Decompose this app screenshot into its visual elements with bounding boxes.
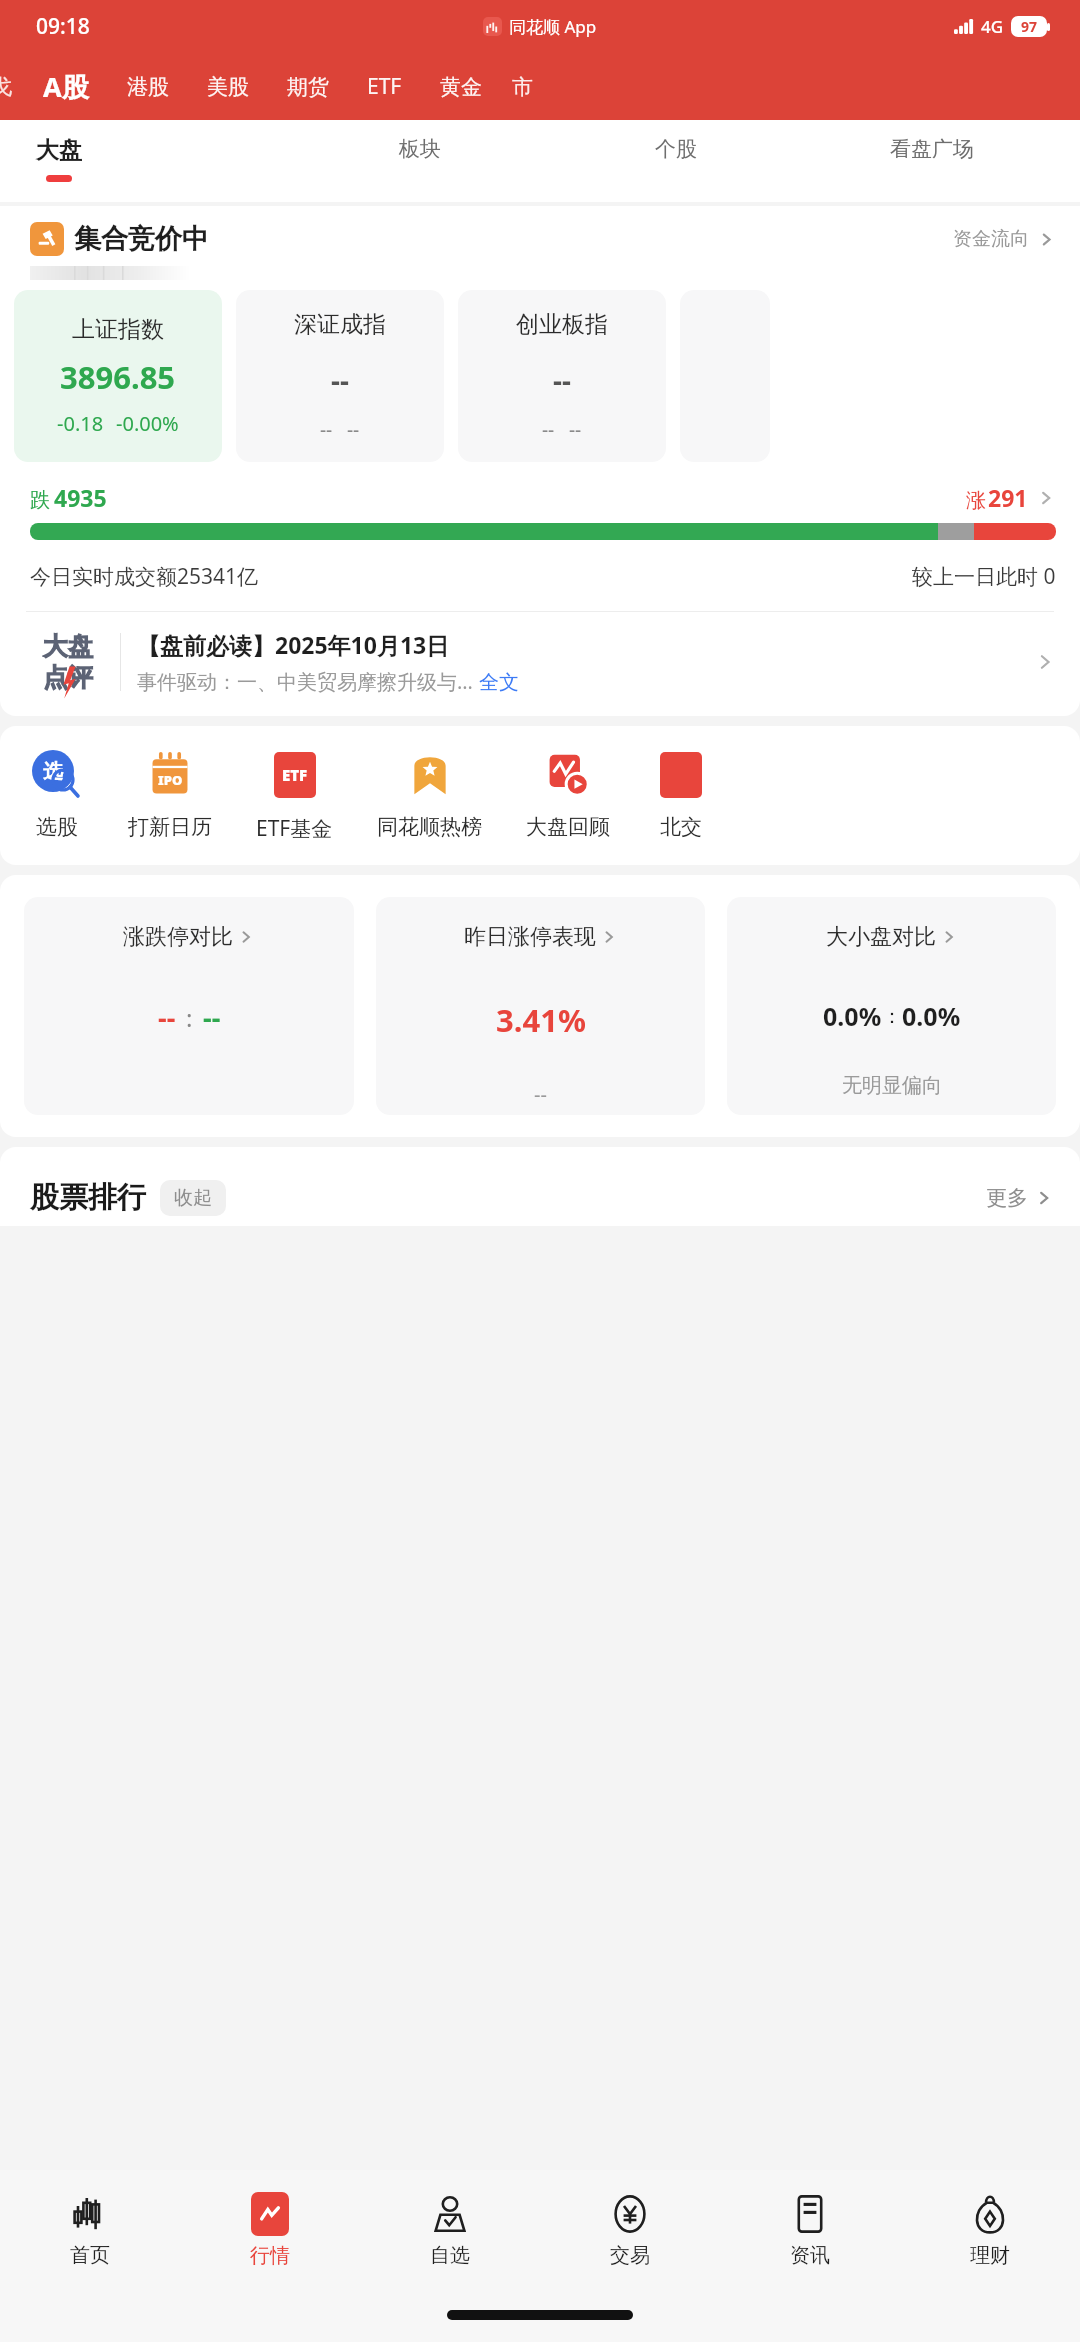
button[interactable]: 期货 [287, 74, 329, 100]
staticText: 3896.85 [60, 356, 176, 398]
staticText: 09:18 [36, 12, 90, 41]
staticText: 板块 [399, 136, 441, 162]
staticText: 0.0% [823, 999, 882, 1033]
staticText: 首页 [70, 2243, 110, 2268]
button[interactable]: 理财 [900, 2170, 1080, 2288]
staticText: ETF [282, 765, 308, 785]
button[interactable]: 美股 [207, 74, 249, 100]
staticText: 大盘 [36, 136, 82, 165]
staticText: 97 [1021, 17, 1038, 36]
staticText: 涨跌停对比 [123, 923, 233, 951]
staticText: -- [158, 999, 176, 1036]
staticText: IPO [158, 771, 183, 789]
button[interactable]: 黄金 [440, 74, 482, 100]
staticText: 今日实时成交额25341亿 [30, 562, 259, 591]
button[interactable]: 大盘回顾 [526, 748, 610, 840]
button[interactable]: 跌 [30, 482, 1056, 513]
button[interactable]: A股 [43, 68, 89, 105]
staticText: 个股 [655, 136, 697, 162]
button[interactable]: 更多 [986, 1185, 1054, 1211]
staticText: 涨 [966, 488, 986, 513]
button[interactable]: 北交 [654, 748, 708, 840]
button[interactable]: 涨跌停对比 [24, 897, 354, 1115]
staticText: -- [542, 417, 555, 443]
button[interactable]: 自选 [360, 2170, 540, 2288]
staticText: 美股 [207, 74, 249, 100]
button[interactable]: 看盘广场 [804, 120, 1060, 162]
staticText: : [186, 1001, 193, 1034]
button[interactable]: 首页 [0, 2170, 180, 2288]
button[interactable]: 资讯 [720, 2170, 900, 2288]
staticText: 大盘回顾 [526, 814, 610, 840]
button[interactable]: 大小盘对比 [727, 897, 1056, 1115]
button[interactable]: 交易 [540, 2170, 720, 2288]
staticText: 港股 [127, 74, 169, 100]
staticText: 事件驱动：一、中美贸易摩擦升级与… [137, 668, 473, 695]
button[interactable]: IPO [128, 748, 212, 840]
staticText: 大小盘对比 [826, 923, 936, 951]
button[interactable]: 同花顺热榜 [377, 748, 482, 840]
staticText: 交易 [610, 2243, 650, 2268]
staticText: 无明显偏向 [842, 1073, 942, 1098]
button[interactable]: ETF [256, 748, 333, 843]
staticText: 【盘前必读】2025年10月13日 [137, 629, 450, 660]
staticText: 理财 [970, 2243, 1010, 2268]
staticText: A股 [43, 68, 89, 105]
staticText: ： [882, 1004, 902, 1029]
button[interactable]: 个股 [548, 120, 804, 162]
staticText: 收起 [174, 1186, 212, 1210]
staticText: -- [553, 361, 571, 399]
staticText: 北交 [660, 814, 702, 840]
button[interactable]: 港股 [127, 74, 169, 100]
staticText: 行情 [250, 2243, 290, 2268]
staticText: -- [534, 1081, 547, 1108]
staticText: 股票排行 [30, 1179, 146, 1216]
button[interactable]: 大盘 [36, 120, 292, 182]
staticText: 4935 [54, 482, 107, 513]
staticText: 自选 [430, 2243, 470, 2268]
button[interactable]: 创业板指 [458, 290, 666, 462]
button[interactable]: 上证指数 [14, 290, 222, 462]
staticText: 大盘 [43, 631, 93, 662]
staticText: ETF基金 [256, 814, 333, 843]
staticText: 集合竞价中 [74, 222, 209, 256]
staticText: 点评 [43, 662, 93, 693]
staticText: 戈 [0, 74, 13, 100]
button[interactable]: 资金流向 [953, 227, 1056, 251]
button[interactable]: 深证成指 [236, 290, 444, 462]
staticText: 0.0% [902, 999, 961, 1033]
staticText: -- [320, 417, 333, 443]
staticText: 同花顺 App [509, 15, 597, 38]
staticText: 更多 [986, 1185, 1028, 1211]
staticText: 跌 [30, 488, 50, 513]
staticText: 黄金 [440, 74, 482, 100]
staticText: 昨日涨停表现 [464, 923, 596, 951]
staticText: 选股 [36, 814, 78, 840]
staticText: 深证成指 [294, 310, 386, 339]
button[interactable]: 选 [30, 748, 84, 840]
button[interactable]: 收起 [160, 1180, 226, 1216]
staticText: -- [203, 999, 221, 1036]
staticText: -0.00% [116, 410, 179, 437]
button[interactable]: ETF [367, 72, 402, 101]
staticText: 同花顺热榜 [377, 814, 482, 840]
button[interactable]: 大盘 [30, 624, 1056, 700]
staticText: 上证指数 [72, 315, 164, 344]
staticText: 资讯 [790, 2243, 830, 2268]
staticText: -- [331, 361, 349, 399]
staticText: 市 [512, 74, 533, 100]
staticText: 选 [43, 759, 63, 784]
button[interactable]: 板块 [292, 120, 548, 162]
staticText: 3.41% [496, 999, 586, 1041]
button[interactable]: 行情 [180, 2170, 360, 2288]
staticText: 全文 [479, 670, 519, 695]
staticText: 期货 [287, 74, 329, 100]
staticText: 资金流向 [953, 227, 1029, 251]
staticText: -- [347, 417, 360, 443]
staticText: 创业板指 [516, 310, 608, 339]
staticText: ETF [367, 72, 402, 101]
staticText: -- [569, 417, 582, 443]
button[interactable]: 昨日涨停表现 [376, 897, 705, 1115]
staticText: 看盘广场 [890, 136, 974, 162]
staticText: 较上一日此时 0 [912, 562, 1056, 591]
